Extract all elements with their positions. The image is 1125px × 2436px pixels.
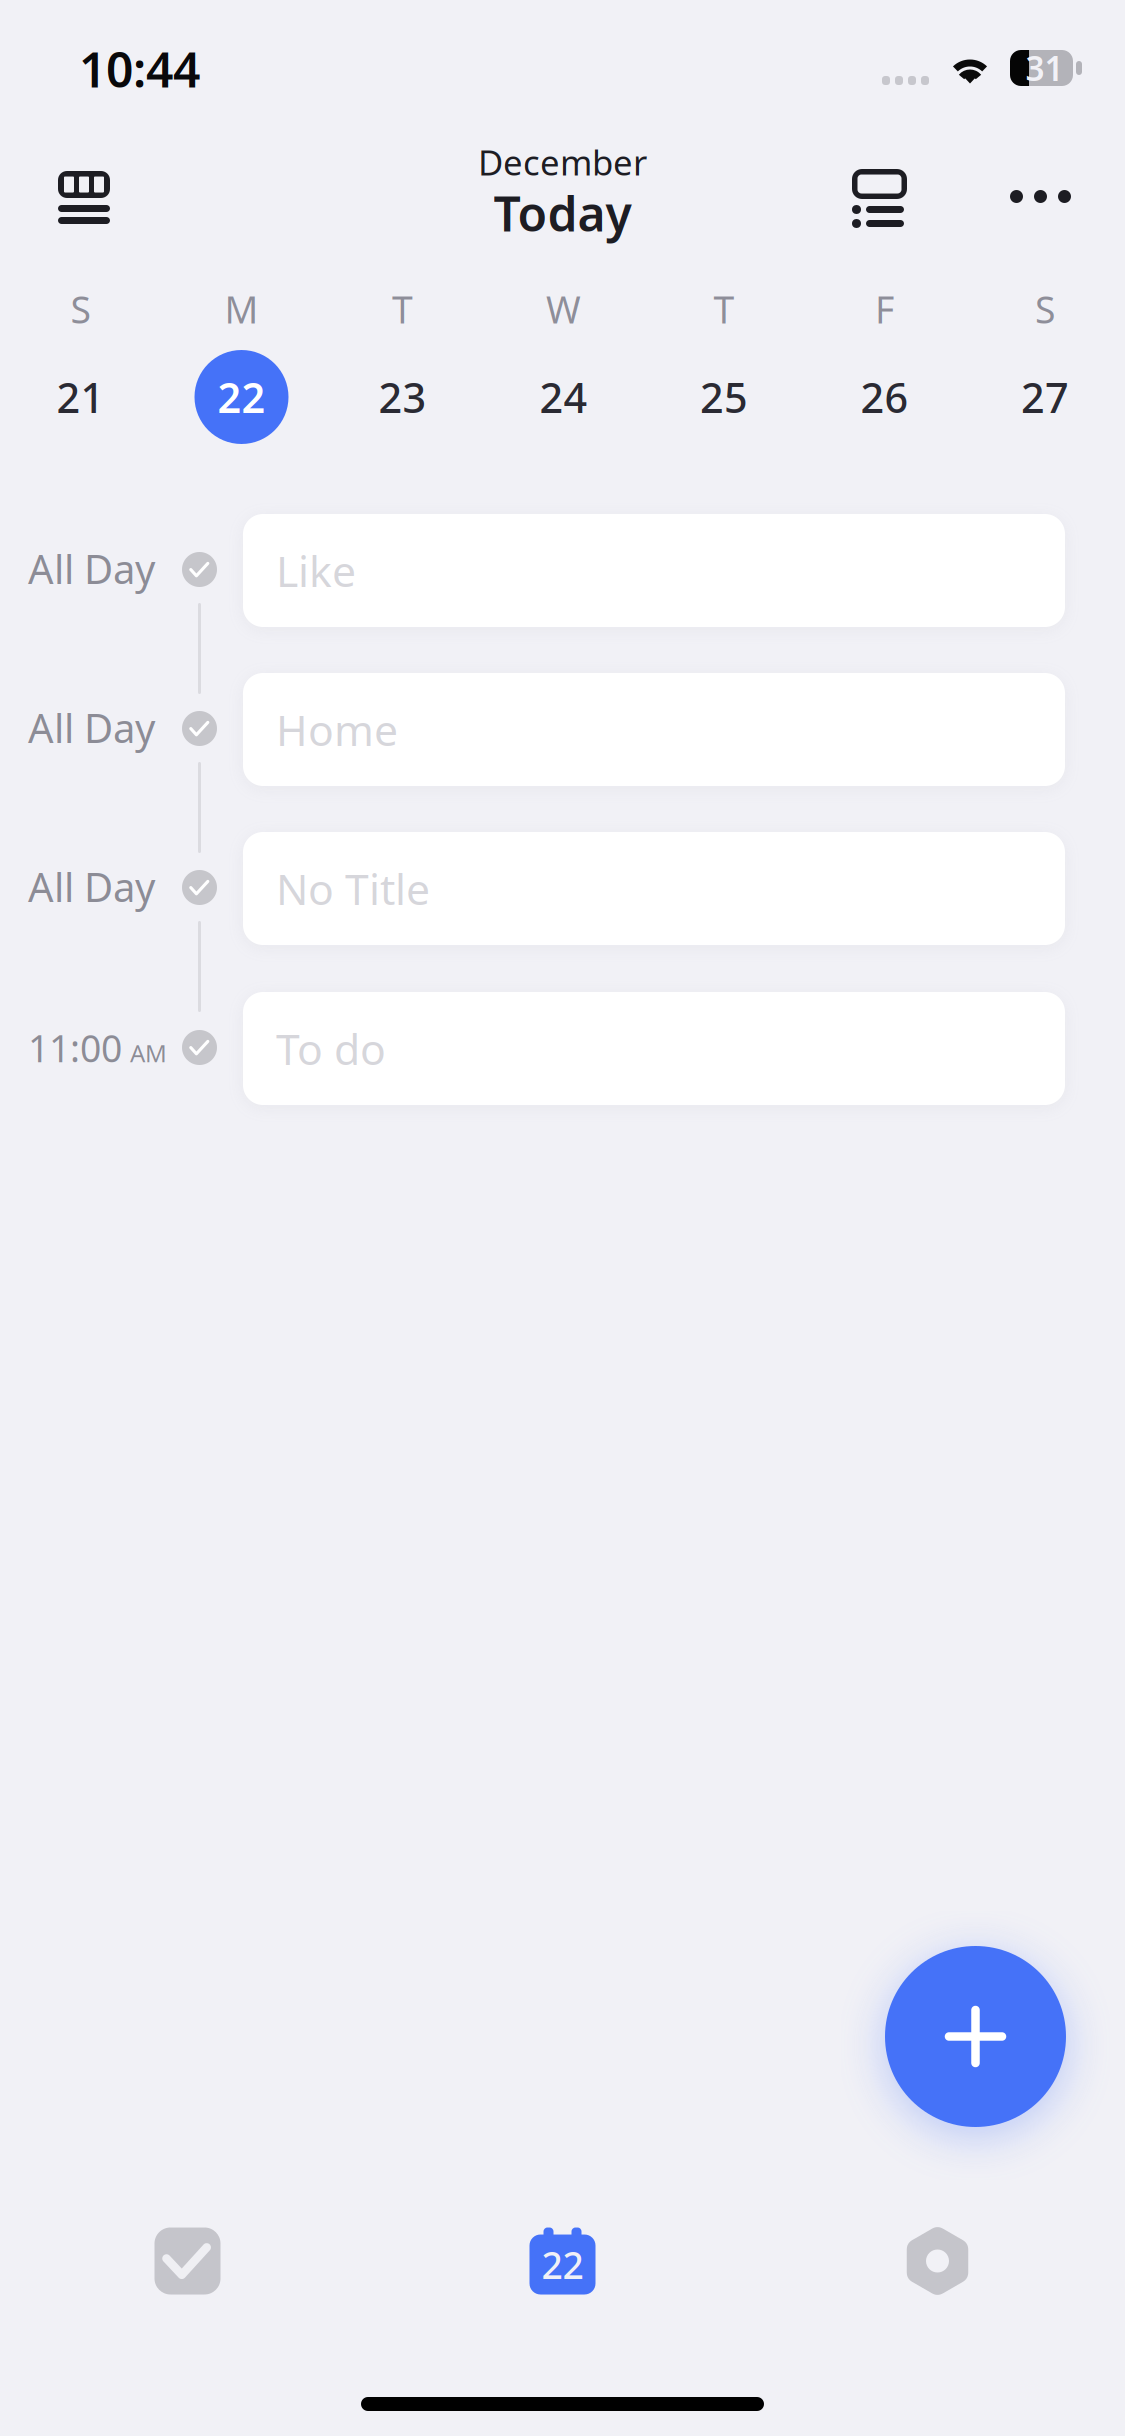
button[interactable]: T bbox=[644, 289, 804, 444]
button[interactable]: Complete bbox=[182, 1030, 217, 1065]
staticText: 31 bbox=[1025, 46, 1063, 90]
button[interactable]: List view bbox=[852, 169, 907, 228]
button[interactable]: S bbox=[965, 289, 1125, 444]
button[interactable]: Complete bbox=[182, 552, 217, 587]
staticText: T bbox=[392, 284, 413, 334]
staticText: December bbox=[478, 139, 647, 185]
staticText: 22 bbox=[217, 370, 265, 424]
staticText: 25 bbox=[700, 370, 748, 424]
staticText: S bbox=[70, 284, 90, 334]
staticText: Like bbox=[276, 542, 356, 599]
button[interactable]: Home bbox=[243, 673, 1065, 786]
button[interactable]: T bbox=[322, 289, 483, 444]
button[interactable]: No Title bbox=[243, 832, 1065, 945]
button[interactable]: Like bbox=[243, 514, 1065, 627]
staticText: M bbox=[224, 284, 258, 334]
staticText: To do bbox=[276, 1020, 386, 1077]
staticText: S bbox=[1035, 284, 1055, 334]
staticText: No Title bbox=[276, 860, 430, 917]
button[interactable]: M bbox=[161, 289, 322, 444]
staticText: 10:44 bbox=[79, 37, 200, 101]
staticText: 24 bbox=[539, 370, 587, 424]
staticText: 26 bbox=[860, 370, 908, 424]
staticText: Home bbox=[276, 701, 398, 758]
staticText: Today bbox=[493, 181, 631, 245]
button[interactable]: Complete bbox=[182, 870, 217, 905]
staticText: 21 bbox=[56, 370, 104, 424]
button[interactable]: More options bbox=[1010, 190, 1071, 203]
button[interactable]: Calendar bbox=[375, 2213, 750, 2309]
staticText: 11:00 bbox=[28, 1023, 122, 1073]
button[interactable]: Complete bbox=[182, 711, 217, 746]
button[interactable]: S bbox=[0, 289, 161, 444]
button[interactable]: Add event bbox=[885, 1946, 1066, 2127]
button[interactable]: Compact view bbox=[58, 171, 110, 224]
staticText: All Day bbox=[28, 701, 155, 754]
button[interactable]: W bbox=[483, 289, 644, 444]
button[interactable]: Settings bbox=[750, 2213, 1125, 2309]
button[interactable]: To do bbox=[243, 992, 1065, 1105]
staticText: T bbox=[713, 284, 734, 334]
staticText: W bbox=[546, 284, 581, 334]
staticText: F bbox=[875, 284, 894, 334]
button[interactable]: F bbox=[804, 289, 965, 444]
staticText: 23 bbox=[378, 370, 426, 424]
staticText: All Day bbox=[28, 860, 155, 913]
staticText: All Day bbox=[28, 542, 155, 595]
staticText: 22 bbox=[541, 2240, 583, 2289]
staticText: 27 bbox=[1021, 370, 1069, 424]
staticText: AM bbox=[130, 1037, 167, 1069]
button[interactable]: Tasks bbox=[0, 2213, 375, 2309]
